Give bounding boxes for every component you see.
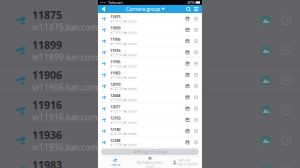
staticText: Log in as user	[178, 162, 197, 166]
staticText: 11916	[32, 98, 62, 112]
staticText: 12010	[110, 81, 120, 87]
button[interactable]: 11906	[98, 35, 202, 47]
staticText: 12103	[110, 115, 120, 120]
staticText: 11983	[32, 158, 62, 168]
staticText: vr12188.kan.com.bl	[110, 143, 137, 147]
staticText: vr11875.kan.com.bl	[32, 22, 106, 33]
button[interactable]: Sign out	[167, 156, 202, 168]
button[interactable]: 11936	[0, 125, 300, 155]
button[interactable]: Cameras	[98, 156, 133, 168]
staticText: vr11906.kan.com.bl	[110, 42, 137, 46]
staticText: Sign out	[178, 159, 190, 162]
staticText: vr11906.kan.com.bl	[32, 82, 106, 93]
staticText: 11875	[32, 8, 62, 22]
button[interactable]: 11875	[0, 5, 300, 35]
staticText: 11875	[110, 14, 120, 19]
staticText: 12044	[110, 93, 120, 98]
button[interactable]: 11983	[98, 69, 202, 80]
button[interactable]: Add camera group	[101, 148, 199, 155]
button[interactable]: 12103	[98, 114, 202, 125]
staticText: vr12044.kan.com.bl	[110, 98, 137, 102]
button[interactable]: 12044	[98, 92, 202, 103]
button[interactable]: Camera group	[126, 5, 165, 13]
button[interactable]: 11916	[0, 95, 300, 125]
staticText: vr11875.kan.com.bl	[110, 20, 137, 23]
staticText: 12188	[110, 138, 120, 143]
staticText: 11916	[110, 48, 120, 53]
staticText: vr11899.kan.com.bl	[110, 31, 137, 34]
button[interactable]: Notification center	[133, 156, 167, 168]
staticText: vr11916.kan.com.bl	[32, 112, 106, 123]
staticText: 11899	[32, 38, 62, 52]
staticText: vr12010.kan.com.bl	[110, 87, 137, 91]
button[interactable]: 11936	[98, 58, 202, 69]
staticText: vr12077.kan.com.bl	[110, 110, 137, 113]
button[interactable]: 11916	[98, 47, 202, 58]
staticText: 11936	[110, 59, 120, 64]
staticText: vr11983.kan.com.bl	[110, 76, 137, 79]
button[interactable]: 11899	[0, 35, 300, 65]
staticText: 11936	[32, 128, 62, 142]
button[interactable]: 12188	[98, 137, 202, 148]
staticText: Camera group	[126, 5, 160, 13]
staticText: on/off	[145, 165, 154, 168]
staticText: Add camera group	[133, 149, 166, 154]
button[interactable]: 11875	[98, 13, 202, 24]
staticText: vr12103.kan.com.bl	[110, 121, 137, 124]
staticText: Cameras	[110, 163, 120, 166]
button[interactable]: 12140	[98, 125, 202, 137]
button[interactable]: Search	[186, 7, 191, 11]
button[interactable]: Back	[98, 5, 105, 13]
button[interactable]: 11906	[0, 65, 300, 95]
staticText: 12140	[110, 126, 120, 132]
staticText: 11899	[110, 25, 120, 30]
staticText: vr11899.kan.com.bl	[32, 52, 106, 63]
staticText: vr11936.kan.com.bl	[32, 142, 106, 153]
button[interactable]: 12077	[98, 103, 202, 114]
staticText: vr12140.kan.com.bl	[110, 132, 137, 136]
button[interactable]: 11899	[98, 24, 202, 35]
staticText: 12077	[110, 104, 120, 109]
staticText: vr11936.kan.com.bl	[110, 65, 137, 68]
button[interactable]: 12010	[98, 80, 202, 92]
button[interactable]: 11983	[0, 155, 300, 168]
staticText: 11906	[32, 68, 62, 82]
staticText: ••• Telecom	[100, 0, 123, 5]
staticText: 11906	[110, 36, 120, 42]
staticText: Notification center	[137, 161, 163, 164]
staticText: vr11916.kan.com.bl	[110, 53, 137, 57]
staticText: 11983	[110, 70, 120, 75]
button[interactable]: Menu	[194, 7, 198, 11]
staticText: 87%	[188, 0, 195, 5]
